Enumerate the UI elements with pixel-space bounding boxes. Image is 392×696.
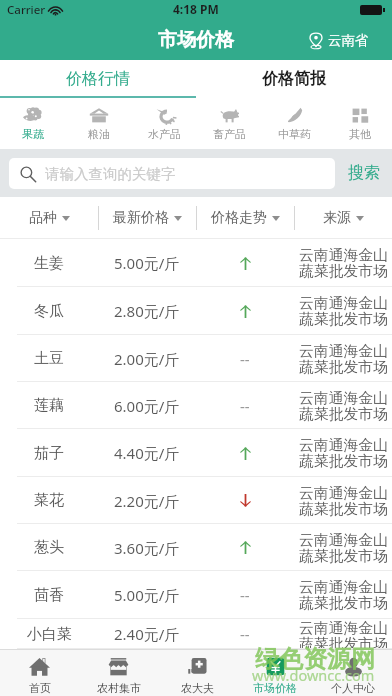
staticText: 市场价格 bbox=[158, 28, 234, 52]
staticText: 首页 bbox=[29, 681, 51, 695]
button[interactable]: 茴香 bbox=[0, 571, 392, 619]
staticText: www.downcc.com bbox=[252, 665, 375, 685]
staticText: 云南通海金山 蔬菜批发市场 bbox=[299, 578, 388, 612]
staticText: 品种 bbox=[29, 209, 57, 227]
staticText: 市场价格 bbox=[253, 681, 297, 695]
staticText: 来源 bbox=[323, 209, 351, 227]
button[interactable]: 个人中心 bbox=[314, 650, 392, 696]
button[interactable]: 冬瓜 bbox=[0, 287, 392, 335]
staticText: 农大夫 bbox=[181, 681, 214, 695]
staticText: 3.60元/斤 bbox=[114, 538, 180, 558]
button[interactable]: 小白菜 bbox=[0, 619, 392, 649]
button[interactable]: 价格简报 bbox=[196, 60, 392, 98]
staticText: 茄子 bbox=[34, 444, 64, 463]
staticText: 5.00元/斤 bbox=[114, 253, 180, 273]
staticText: 价格简报 bbox=[262, 69, 326, 89]
staticText: -- bbox=[240, 624, 250, 644]
button[interactable]: 市场价格 bbox=[236, 650, 314, 696]
staticText: 云南通海金山 蔬菜批发市场 bbox=[299, 619, 388, 649]
button[interactable]: 其他 bbox=[327, 98, 392, 149]
button[interactable]: 农村集市 bbox=[79, 650, 158, 696]
button[interactable]: 首页 bbox=[0, 650, 79, 696]
staticText: 云南通海金山 蔬菜批发市场 bbox=[299, 389, 388, 423]
button[interactable]: 农大夫 bbox=[158, 650, 236, 696]
button[interactable]: 茄子 bbox=[0, 429, 392, 477]
staticText: -- bbox=[240, 349, 250, 369]
button[interactable]: 价格行情 bbox=[0, 60, 196, 98]
staticText: 云南通海金山 蔬菜批发市场 bbox=[299, 246, 388, 280]
staticText: 云南省 bbox=[328, 32, 369, 49]
button[interactable]: 中草药 bbox=[262, 98, 327, 149]
button[interactable]: 搜索 bbox=[335, 149, 392, 197]
staticText: 最新价格 bbox=[113, 209, 169, 227]
button[interactable]: 品种 bbox=[0, 197, 98, 239]
button[interactable]: 菜花 bbox=[0, 477, 392, 524]
staticText: 搜索 bbox=[348, 163, 380, 183]
staticText: -- bbox=[240, 396, 250, 416]
staticText: 中草药 bbox=[278, 127, 311, 141]
staticText: 4:18 PM bbox=[173, 1, 219, 17]
staticText: 绿色资源网 bbox=[255, 644, 375, 674]
staticText: 4.40元/斤 bbox=[114, 443, 180, 463]
button[interactable]: 最新价格 bbox=[98, 197, 196, 239]
staticText: 云南通海金山 蔬菜批发市场 bbox=[299, 531, 388, 565]
button[interactable]: 粮油 bbox=[66, 98, 132, 149]
button[interactable]: 土豆 bbox=[0, 335, 392, 382]
staticText: 粮油 bbox=[88, 127, 110, 141]
staticText: 个人中心 bbox=[331, 681, 375, 695]
staticText: 土豆 bbox=[34, 349, 64, 368]
button[interactable]: 生姜 bbox=[0, 239, 392, 287]
staticText: 请输入查询的关键字 bbox=[45, 165, 176, 183]
staticText: 云南通海金山 蔬菜批发市场 bbox=[299, 436, 388, 470]
staticText: 冬瓜 bbox=[34, 302, 64, 321]
staticText: 水产品 bbox=[148, 127, 181, 141]
staticText: 莲藕 bbox=[34, 396, 64, 415]
staticText: 6.00元/斤 bbox=[114, 396, 180, 416]
staticText: 畜产品 bbox=[213, 127, 246, 141]
button[interactable]: 莲藕 bbox=[0, 382, 392, 429]
button[interactable]: 水产品 bbox=[132, 98, 197, 149]
staticText: 云南通海金山 蔬菜批发市场 bbox=[299, 294, 388, 328]
button[interactable]: 果蔬 bbox=[0, 98, 66, 149]
staticText: 生姜 bbox=[34, 254, 64, 273]
staticText: 2.80元/斤 bbox=[114, 301, 180, 321]
staticText: 2.20元/斤 bbox=[114, 491, 180, 511]
staticText: 2.40元/斤 bbox=[114, 624, 180, 644]
staticText: -- bbox=[240, 585, 250, 605]
button[interactable]: 价格走势 bbox=[196, 197, 294, 239]
staticText: 云南通海金山 蔬菜批发市场 bbox=[299, 342, 388, 376]
staticText: 葱头 bbox=[34, 538, 64, 557]
button[interactable]: 请输入查询的关键字 bbox=[9, 158, 335, 189]
staticText: 菜花 bbox=[34, 491, 64, 510]
button[interactable]: 来源 bbox=[294, 197, 392, 239]
staticText: 农村集市 bbox=[97, 681, 141, 695]
button[interactable]: 云南省 bbox=[305, 29, 371, 51]
staticText: 5.00元/斤 bbox=[114, 585, 180, 605]
staticText: 其他 bbox=[349, 127, 371, 141]
staticText: 价格行情 bbox=[66, 69, 130, 89]
button[interactable]: 葱头 bbox=[0, 524, 392, 571]
staticText: 小白菜 bbox=[27, 625, 72, 644]
button[interactable]: 畜产品 bbox=[197, 98, 262, 149]
staticText: 果蔬 bbox=[22, 127, 44, 141]
staticText: Carrier bbox=[7, 2, 46, 18]
staticText: 2.00元/斤 bbox=[114, 349, 180, 369]
staticText: 茴香 bbox=[34, 586, 64, 605]
staticText: 价格走势 bbox=[211, 209, 267, 227]
staticText: 云南通海金山 蔬菜批发市场 bbox=[299, 484, 388, 518]
